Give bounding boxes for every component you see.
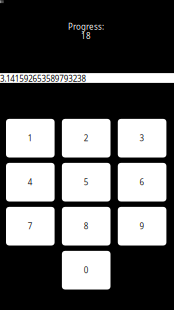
staticText: 1 <box>28 133 33 144</box>
button[interactable]: 6 <box>118 163 166 201</box>
button[interactable]: 3 <box>118 119 166 157</box>
staticText: 9 <box>140 221 145 232</box>
staticText: 18 <box>81 30 91 41</box>
staticText: Progress: <box>68 21 104 32</box>
button[interactable]: 1 <box>6 119 55 157</box>
staticText: 3.141592653589793238 <box>0 73 87 84</box>
staticText: 4 <box>28 177 33 188</box>
button[interactable]: 8 <box>62 207 110 245</box>
button[interactable]: 0 <box>62 251 110 289</box>
staticText: 2 <box>84 133 89 144</box>
button[interactable]: 9 <box>118 207 166 245</box>
button[interactable]: 2 <box>62 119 110 157</box>
staticText: 7 <box>28 221 33 232</box>
button[interactable]: 4 <box>6 163 55 201</box>
staticText: 8 <box>84 221 89 232</box>
staticText: 3 <box>140 133 145 144</box>
staticText: 0 <box>84 265 89 276</box>
staticText: 6 <box>140 177 145 188</box>
button[interactable]: 5 <box>62 163 110 201</box>
staticText: 5 <box>84 177 89 188</box>
button[interactable]: 7 <box>6 207 55 245</box>
